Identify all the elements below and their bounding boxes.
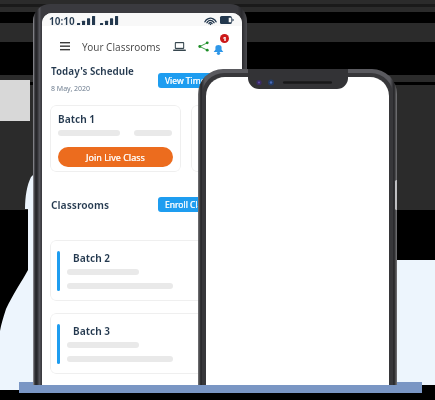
button[interactable]: Desktop view	[170, 37, 188, 55]
button[interactable]: Menu	[56, 37, 74, 55]
staticText: Batch 2	[73, 251, 110, 265]
staticText: Batch 3	[73, 324, 110, 338]
staticText: Today's Schedule	[51, 65, 134, 78]
button[interactable]: Notifications	[213, 34, 234, 55]
staticText: Batch 1	[58, 112, 95, 126]
staticText: 8 May, 2020	[51, 84, 91, 94]
button[interactable]: View Timetable	[158, 73, 233, 88]
staticText: Join Live Class	[86, 151, 145, 163]
button[interactable]: Join Live Class	[58, 147, 173, 167]
staticText: View Timetable	[165, 75, 226, 87]
button[interactable]: Enroll Class	[158, 197, 218, 212]
staticText: 10:10	[49, 14, 75, 26]
button[interactable]: Share	[194, 37, 212, 55]
staticText: Your Classrooms	[82, 40, 161, 54]
button[interactable]: Your Classrooms	[82, 40, 161, 54]
staticText: 1	[223, 35, 227, 43]
button[interactable]: Batch 1	[50, 105, 181, 172]
staticText: Enroll Class	[165, 199, 211, 211]
staticText: Classrooms	[51, 198, 110, 212]
button[interactable]: Batch 2	[50, 240, 242, 301]
button[interactable]: Batch 3	[50, 313, 242, 374]
